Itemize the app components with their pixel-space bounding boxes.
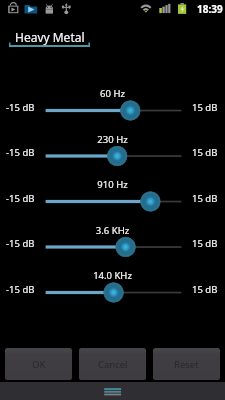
staticText: Reset [174,358,199,371]
staticText: 15 dB [192,283,218,296]
staticText: 15 dB [192,146,218,159]
staticText: 910 Hz [0,178,225,191]
button[interactable] [0,0,225,400]
staticText: -15 dB [6,237,35,250]
staticText: Heavy Metal [15,29,85,45]
button[interactable]: Menu [101,385,125,397]
staticText: -15 dB [6,146,35,159]
staticText: 15 dB [192,101,218,114]
button[interactable]: Reset [153,348,220,380]
button[interactable] [0,0,225,400]
button[interactable]: OK [5,348,72,380]
staticText: 3.6 KHz [0,224,225,237]
staticText: 18:39 [197,2,223,16]
button[interactable] [0,0,225,400]
staticText: 60 Hz [0,87,225,100]
staticText: 14.0 KHz [0,269,225,282]
button[interactable] [0,0,225,400]
staticText: -15 dB [6,192,35,205]
staticText: 15 dB [192,237,218,250]
button[interactable] [0,0,225,400]
staticText: 230 Hz [0,133,225,146]
staticText: -15 dB [6,101,35,114]
staticText: Cancel [98,358,128,371]
staticText: -15 dB [6,283,35,296]
staticText: 15 dB [192,192,218,205]
staticText: OK [32,358,46,371]
button[interactable]: Cancel [79,348,146,380]
